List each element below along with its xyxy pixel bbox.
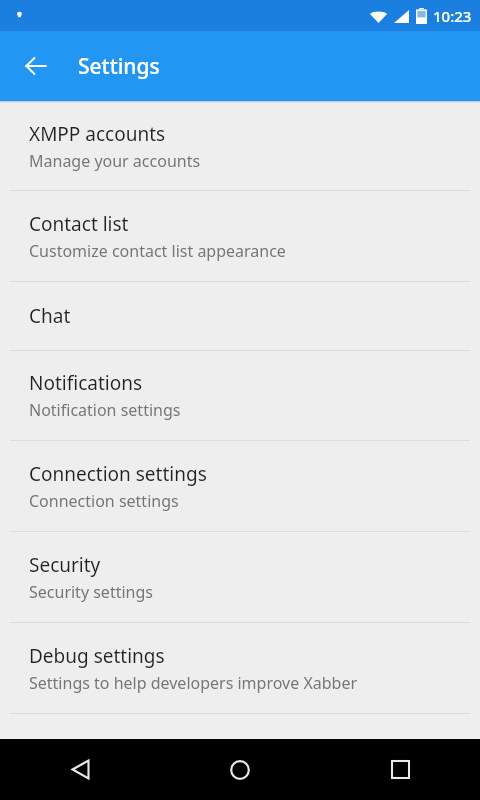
staticText: Customize contact list appearance	[29, 240, 286, 262]
staticText: Settings	[78, 52, 160, 81]
button[interactable]: Back	[0, 739, 160, 800]
staticText: Debug settings	[29, 643, 165, 669]
staticText: Chat	[29, 303, 71, 329]
staticText: XMPP accounts	[29, 121, 166, 147]
staticText: Contact list	[29, 211, 129, 237]
button[interactable]: Home	[160, 739, 320, 800]
staticText: Notifications	[29, 370, 143, 396]
staticText: Connection settings	[29, 461, 207, 487]
staticText: Connection settings	[29, 490, 179, 512]
button[interactable]: Back	[12, 42, 60, 90]
staticText: Settings to help developers improve Xabb…	[29, 672, 358, 694]
button[interactable]: Debug settings	[0, 623, 480, 713]
button[interactable]: Chat	[0, 282, 480, 350]
staticText: Security settings	[29, 581, 153, 603]
staticText: Notification settings	[29, 399, 181, 421]
staticText: Security	[29, 552, 101, 578]
button[interactable]: Contact list	[0, 191, 480, 281]
button[interactable]: Notifications	[0, 351, 480, 440]
button[interactable]: XMPP accounts	[0, 103, 480, 190]
button[interactable]: Connection settings	[0, 441, 480, 531]
staticText: 10:23	[433, 6, 472, 26]
staticText: Manage your accounts	[29, 150, 201, 172]
button[interactable]: Security	[0, 532, 480, 622]
button[interactable]: Recent apps	[320, 739, 480, 800]
